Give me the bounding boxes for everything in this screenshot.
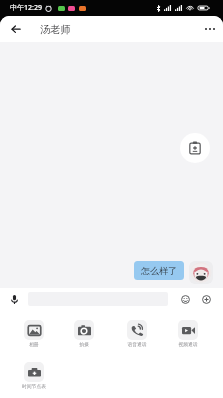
button[interactable]: 怎么样了 <box>134 261 184 280</box>
button[interactable]: Back <box>5 18 27 40</box>
staticText: 视频通话 <box>178 341 198 347</box>
button[interactable]: 拍摄 <box>57 320 111 347</box>
button[interactable]: More options <box>199 18 221 40</box>
staticText: 拍摄 <box>79 341 89 347</box>
button[interactable]: Medical record <box>180 133 210 163</box>
button[interactable]: 时间节点表 <box>7 362 61 389</box>
staticText: 相册 <box>29 341 39 347</box>
button[interactable]: More <box>198 291 214 307</box>
staticText: 语音通话 <box>127 341 147 347</box>
button[interactable]: Voice input <box>6 291 22 307</box>
button[interactable]: 视频通话 <box>161 320 215 347</box>
button[interactable]: 相册 <box>7 320 61 347</box>
staticText: 怎么样了 <box>141 265 177 276</box>
staticText: 中午12:29 <box>10 3 42 13</box>
button[interactable]: Avatar <box>189 261 213 284</box>
button[interactable]: Emoji <box>177 291 193 307</box>
staticText: 时间节点表 <box>22 383 46 389</box>
staticText: 汤老师 <box>40 23 71 36</box>
button[interactable]: 语音通话 <box>110 320 164 347</box>
